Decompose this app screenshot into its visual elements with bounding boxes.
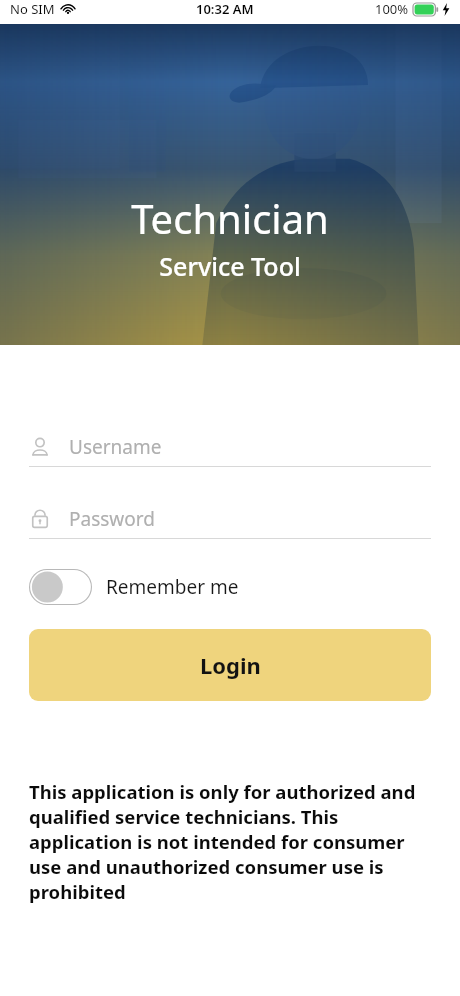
staticText: Remember me — [106, 574, 239, 600]
button[interactable]: Remember me — [29, 569, 431, 605]
staticText: Password — [69, 506, 155, 532]
staticText: Technician — [131, 191, 329, 245]
button[interactable]: Username — [29, 428, 431, 467]
staticText: Service Tool — [159, 249, 301, 283]
button[interactable]: Password — [29, 500, 431, 539]
staticText: Username — [69, 434, 162, 460]
staticText: Login — [200, 650, 261, 680]
button[interactable]: Login — [29, 629, 431, 701]
staticText: 100% — [375, 0, 409, 18]
staticText: 10:32 AM — [196, 0, 254, 18]
staticText: This application is only for authorized … — [29, 779, 431, 904]
staticText: No SIM — [10, 0, 55, 18]
